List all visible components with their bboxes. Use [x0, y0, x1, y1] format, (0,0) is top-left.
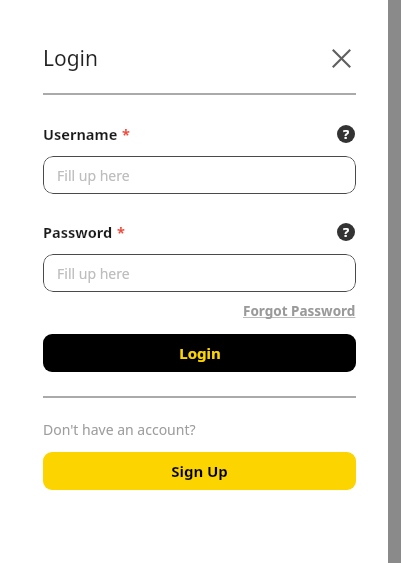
button[interactable]: Forgot Password	[243, 302, 356, 320]
staticText: ?	[343, 125, 350, 143]
button[interactable]: Help	[336, 124, 356, 144]
staticText: Forgot Password	[243, 302, 356, 320]
staticText: Username	[43, 124, 118, 144]
staticText: ?	[343, 223, 350, 241]
staticText: Login	[179, 343, 221, 363]
staticText: Sign Up	[171, 461, 228, 481]
button[interactable]: Fill up here	[43, 254, 356, 292]
staticText: *	[117, 222, 125, 242]
staticText: Fill up here	[57, 166, 130, 185]
staticText: Login	[43, 44, 99, 73]
button[interactable]: Sign Up	[43, 452, 356, 490]
button[interactable]: Help	[336, 222, 356, 242]
staticText: Fill up here	[57, 264, 130, 283]
button[interactable]: Close	[326, 43, 356, 73]
staticText: *	[122, 124, 130, 144]
staticText: Don't have an account?	[43, 420, 196, 439]
button[interactable]: Fill up here	[43, 156, 356, 194]
button[interactable]: Login	[43, 334, 356, 372]
staticText: Password	[43, 222, 113, 242]
